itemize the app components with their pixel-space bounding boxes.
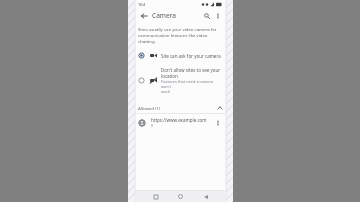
button[interactable]: Site can ask for your camera bbox=[135, 49, 226, 62]
button[interactable]: More options bbox=[212, 10, 223, 21]
button[interactable]: Recent apps bbox=[151, 192, 160, 201]
button[interactable]: Site options bbox=[213, 118, 223, 128]
button[interactable]: Search bbox=[201, 10, 212, 21]
staticText: Camera bbox=[152, 11, 177, 20]
staticText: 0 bbox=[151, 123, 154, 128]
button[interactable]: Don't allow sites to see your bbox=[135, 65, 226, 96]
staticText: Site can ask for your camera bbox=[161, 53, 221, 59]
button[interactable]: Allowed (1) bbox=[135, 102, 226, 113]
staticText: Features that need a camera won't bbox=[161, 79, 223, 89]
staticText: communication features like video chatti… bbox=[138, 32, 223, 44]
staticText: work bbox=[161, 89, 171, 94]
staticText: location bbox=[161, 73, 178, 79]
button[interactable]: Back bbox=[201, 192, 210, 201]
staticText: 10:4 bbox=[138, 2, 146, 7]
staticText: https://www.example.com bbox=[151, 117, 207, 123]
staticText: Don't allow sites to see your bbox=[161, 67, 221, 73]
button[interactable]: https://www.example.com bbox=[135, 114, 226, 131]
staticText: Sites usually use your video camera for bbox=[138, 26, 217, 32]
staticText: Allowed (1) bbox=[138, 105, 161, 111]
button[interactable]: Navigate up bbox=[138, 10, 149, 21]
button[interactable]: Home bbox=[176, 192, 185, 201]
